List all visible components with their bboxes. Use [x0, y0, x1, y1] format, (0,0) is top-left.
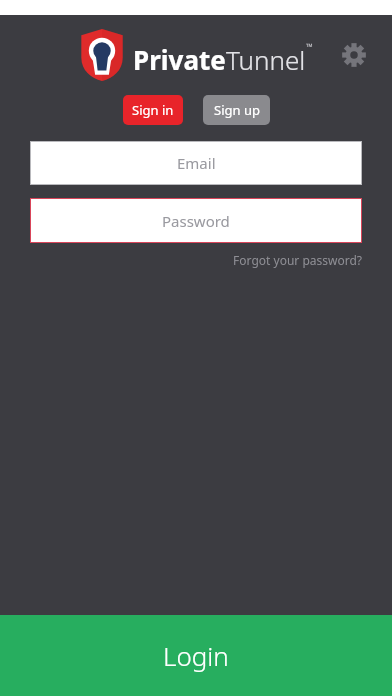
button[interactable]: Password: [30, 198, 362, 243]
staticText: Email: [177, 153, 216, 173]
staticText: Tunnel: [226, 42, 306, 77]
staticText: Sign up: [214, 101, 260, 119]
staticText: ™: [306, 40, 313, 52]
button[interactable]: Settings: [334, 35, 374, 75]
staticText: Forgot your password?: [233, 252, 362, 268]
button[interactable]: Login: [0, 615, 392, 696]
button[interactable]: Email: [30, 141, 362, 185]
button[interactable]: Sign in: [123, 95, 183, 125]
button[interactable]: Forgot your password?: [233, 249, 362, 271]
staticText: Sign in: [132, 101, 174, 119]
button[interactable]: Sign up: [203, 95, 270, 125]
staticText: Private: [133, 42, 226, 77]
staticText: Password: [162, 211, 230, 231]
staticText: Login: [163, 638, 229, 673]
